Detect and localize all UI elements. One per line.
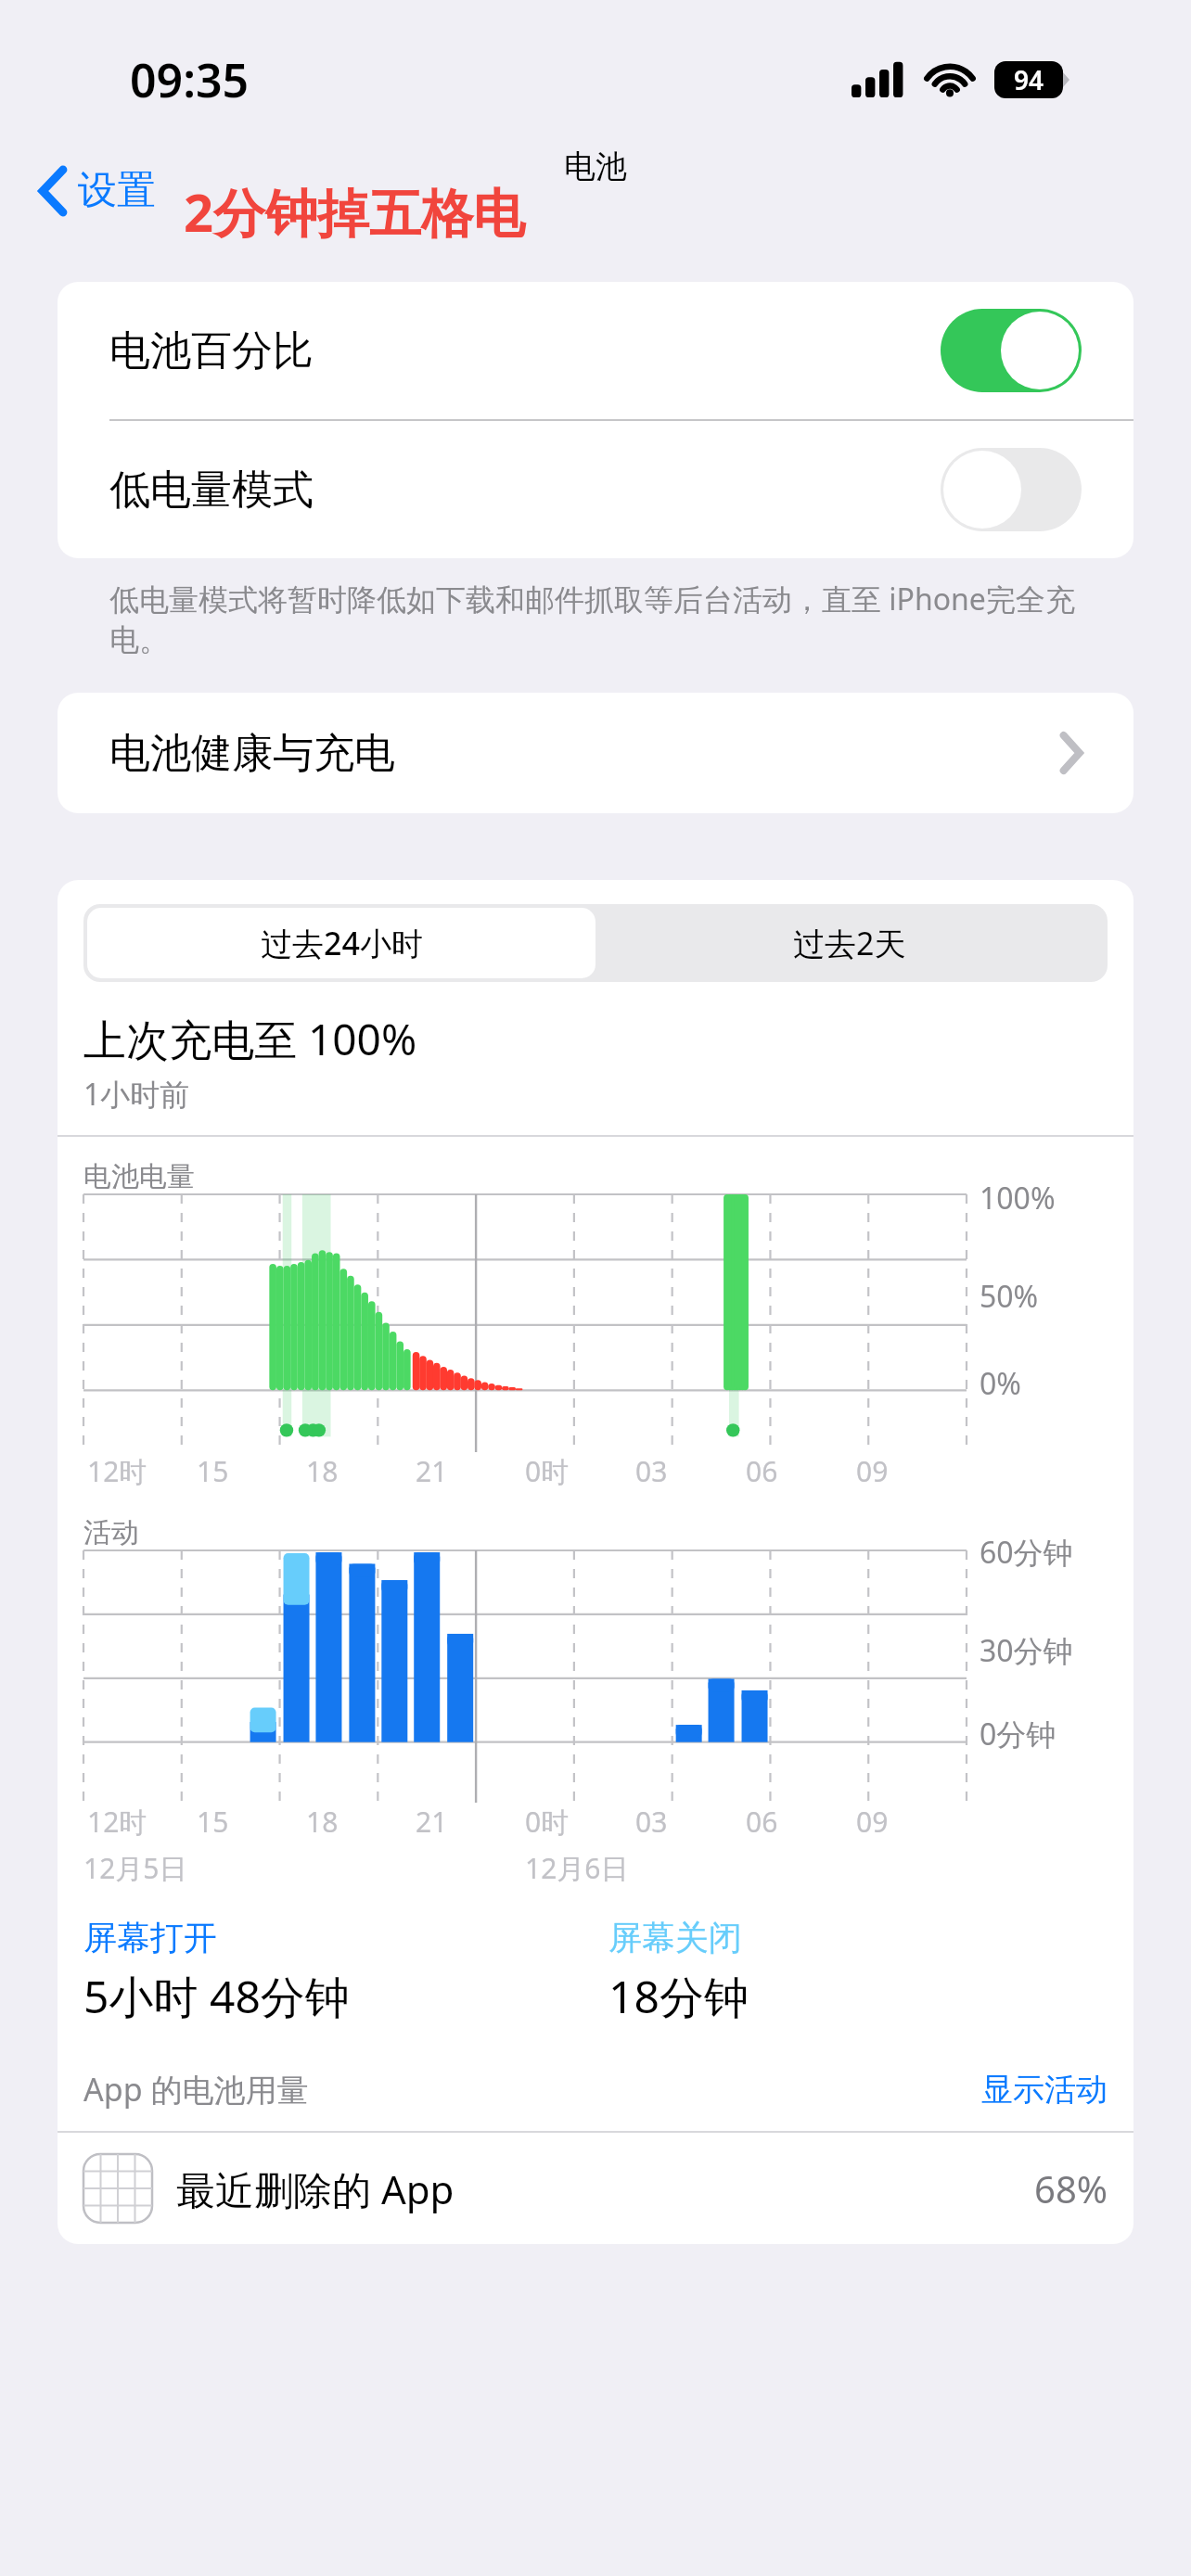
- staticText: 15: [197, 1803, 306, 1841]
- staticText: 1小时前: [83, 1074, 190, 1115]
- staticText: 50%: [980, 1276, 1039, 1317]
- staticText: 12月6日: [525, 1849, 967, 1887]
- staticText: 屏幕打开: [83, 1917, 217, 1958]
- staticText: 18分钟: [608, 1966, 749, 2027]
- staticText: 12时: [87, 1803, 197, 1841]
- button[interactable]: 最近删除的 App: [58, 2133, 1133, 2244]
- button[interactable]: 显示活动: [981, 2070, 1108, 2110]
- staticText: 09: [856, 1803, 967, 1841]
- staticText: 03: [635, 1452, 746, 1490]
- staticText: 03: [635, 1803, 746, 1841]
- staticText: 18: [306, 1452, 416, 1490]
- staticText: 电池电量: [83, 1159, 195, 1194]
- staticText: 上次充电至 100%: [83, 1010, 417, 1068]
- staticText: 屏幕关闭: [608, 1917, 742, 1958]
- staticText: 最近删除的 App: [176, 2162, 1034, 2215]
- staticText: 过去24小时: [261, 922, 423, 964]
- staticText: 低电量模式: [109, 465, 941, 516]
- staticText: App 的电池用量: [83, 2068, 981, 2111]
- staticText: 21: [416, 1452, 525, 1490]
- staticText: 电池百分比: [109, 325, 941, 376]
- staticText: 0%: [980, 1363, 1021, 1404]
- staticText: 18: [306, 1803, 416, 1841]
- button[interactable]: 电池百分比: [58, 282, 1133, 419]
- staticText: 2分钟掉五格电: [184, 176, 526, 247]
- staticText: 12时: [87, 1452, 197, 1490]
- button[interactable]: 设置: [33, 159, 163, 223]
- staticText: 0时: [525, 1452, 635, 1490]
- staticText: 低电量模式将暂时降低如下载和邮件抓取等后台活动，直至 iPhone完全充电。: [109, 579, 1108, 659]
- staticText: 15: [197, 1452, 306, 1490]
- button[interactable]: [941, 448, 1082, 531]
- button[interactable]: 过去24小时: [87, 908, 595, 978]
- staticText: 21: [416, 1803, 525, 1841]
- staticText: 活动: [83, 1515, 139, 1550]
- staticText: 30分钟: [980, 1630, 1073, 1671]
- button[interactable]: [941, 309, 1082, 392]
- staticText: 电池: [564, 147, 627, 186]
- staticText: 0分钟: [980, 1714, 1057, 1754]
- button[interactable]: 过去2天: [595, 908, 1104, 978]
- staticText: 09:35: [130, 48, 250, 111]
- staticText: 68%: [1034, 2163, 1108, 2213]
- staticText: 显示活动: [981, 2070, 1108, 2110]
- button[interactable]: 低电量模式: [58, 421, 1133, 558]
- staticText: 12月5日: [83, 1849, 525, 1887]
- staticText: 60分钟: [980, 1532, 1073, 1573]
- staticText: 电池健康与充电: [109, 728, 1061, 779]
- staticText: 0时: [525, 1803, 635, 1841]
- staticText: 100%: [980, 1178, 1056, 1218]
- staticText: 09: [856, 1452, 967, 1490]
- staticText: 过去2天: [793, 922, 906, 964]
- staticText: 06: [746, 1452, 856, 1490]
- staticText: 5小时 48分钟: [83, 1966, 350, 2027]
- staticText: 06: [746, 1803, 856, 1841]
- button[interactable]: 电池健康与充电: [58, 693, 1133, 813]
- staticText: 94: [1014, 62, 1044, 97]
- staticText: 设置: [78, 166, 156, 215]
